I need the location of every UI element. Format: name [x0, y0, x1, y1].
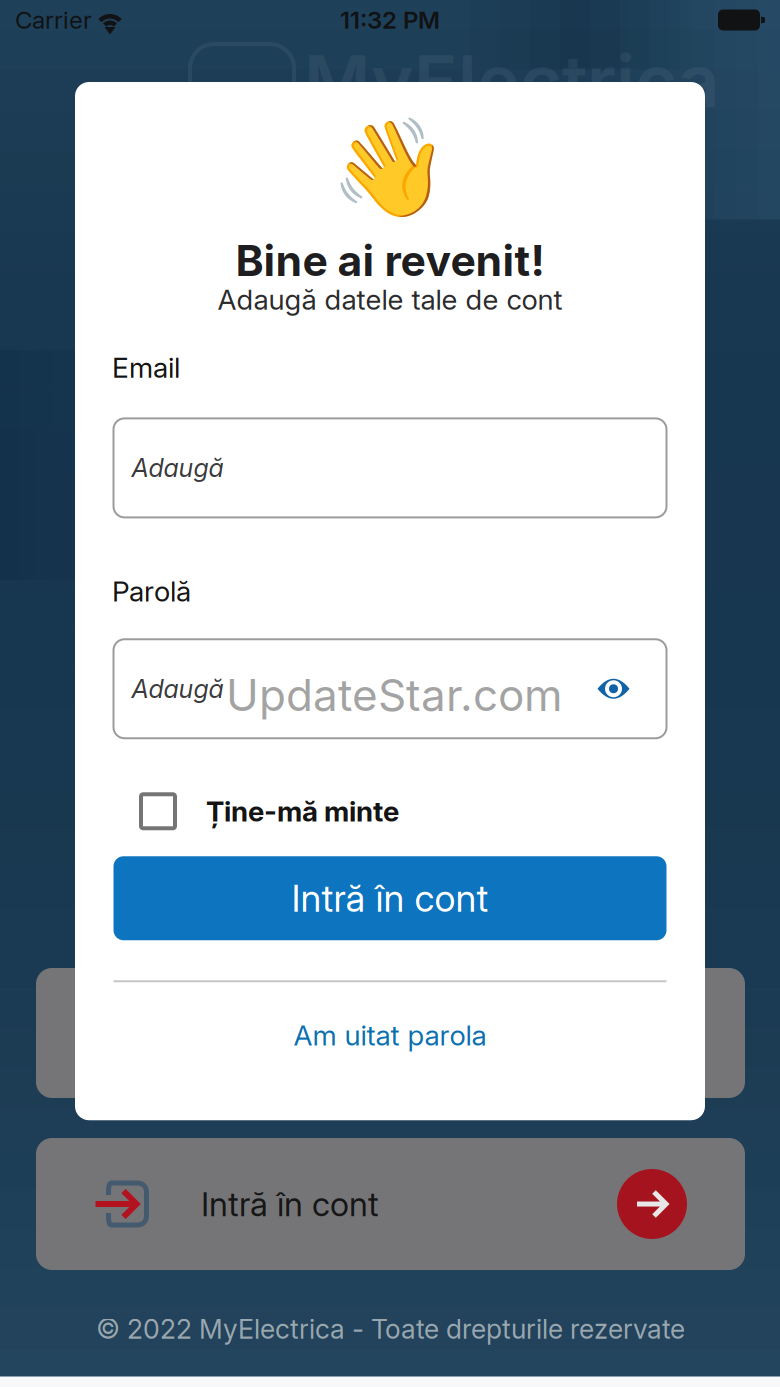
- staticText: Adaugă: [131, 673, 223, 704]
- button[interactable]: Ține-mă minte: [75, 789, 705, 833]
- staticText: Adaugă: [131, 453, 223, 483]
- button[interactable]: Am uitat parola: [113, 1015, 666, 1055]
- staticText: Carrier: [15, 5, 92, 34]
- staticText: Intră în cont: [201, 1184, 379, 1224]
- staticText: Ține-mă minte: [206, 794, 399, 828]
- staticText: Intră în cont: [291, 876, 488, 921]
- staticText: UpdateStar.com: [226, 668, 563, 722]
- staticText: Email: [112, 350, 180, 384]
- staticText: Parolă: [112, 574, 191, 608]
- button[interactable]: Intră în cont: [36, 1138, 745, 1270]
- staticText: 11:32 PM: [340, 5, 440, 34]
- staticText: 👋: [330, 112, 450, 224]
- staticText: Bine ai revenit!: [235, 235, 544, 286]
- staticText: MyElectrica: [304, 37, 719, 125]
- staticText: © 2022 MyElectrica - Toate drepturile re…: [96, 1313, 685, 1345]
- staticText: Adaugă datele tale de cont: [217, 283, 562, 316]
- button[interactable]: Intră în cont: [113, 856, 666, 940]
- staticText: Am uitat parola: [293, 1018, 486, 1052]
